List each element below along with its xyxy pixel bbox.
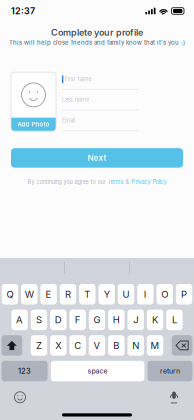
button[interactable]: Y [98,284,115,304]
button[interactable]: return [148,361,192,381]
staticText: & [123,179,131,185]
button[interactable]: D [50,310,66,330]
button[interactable]: I [137,284,154,304]
button[interactable]: N [127,335,144,356]
staticText: F [75,314,81,326]
button[interactable]: C [69,335,86,356]
button[interactable]: 123 [1,361,48,381]
button[interactable]: E [40,284,57,304]
button[interactable]: X [50,335,66,356]
staticText: Terms [107,179,123,185]
button[interactable]: J [127,310,144,330]
staticText: Privacy Policy [131,179,166,185]
button[interactable]: S [31,310,47,330]
button[interactable]: Terms [107,179,123,185]
button[interactable]: space [51,361,144,381]
staticText: X [55,340,61,351]
staticText: Email [62,117,75,124]
button[interactable]: Next [11,148,183,168]
staticText: Y [104,288,110,300]
staticText: O [161,288,168,300]
button[interactable]: O [156,284,173,304]
button[interactable]: Emoji keyboard [12,389,28,405]
button[interactable]: U [118,284,134,304]
staticText: R [65,288,71,300]
staticText: Q [6,288,13,300]
button[interactable]: Privacy Policy [131,179,166,185]
button[interactable]: P [176,284,192,304]
staticText: L [172,314,177,326]
staticText: A [16,314,23,326]
staticText: U [122,288,129,300]
staticText: Complete your profile [51,27,143,38]
button[interactable]: W [21,284,37,304]
button[interactable]: V [89,335,105,356]
staticText: H [113,314,120,326]
button[interactable]: H [108,310,124,330]
button[interactable]: L [166,310,183,330]
button[interactable]: Q [2,284,18,304]
staticText: T [84,288,90,300]
staticText: J [133,314,138,326]
button[interactable]: Z [31,335,47,356]
staticText: V [93,340,100,351]
staticText: B [113,340,119,351]
staticText: Add Photo [17,121,49,128]
button[interactable]: R [60,284,76,304]
staticText: I [144,288,147,300]
button[interactable]: F [69,310,86,330]
button[interactable]: T [79,284,95,304]
button[interactable]: Dictation [166,389,182,405]
staticText: W [25,288,34,300]
button[interactable]: G [89,310,105,330]
button[interactable]: B [108,335,124,356]
staticText: E [46,288,52,300]
staticText: space [88,367,108,375]
staticText: G [93,314,100,326]
staticText: First name [64,76,91,83]
button[interactable]: K [147,310,163,330]
button[interactable]: A [11,310,28,330]
staticText: M [150,340,159,351]
button[interactable]: Delete [172,335,192,356]
staticText: return [160,367,180,375]
staticText: 12:37 [11,6,35,16]
button[interactable]: M [147,335,163,356]
staticText: Z [36,340,42,351]
staticText: By continuing you agree to our [27,179,107,185]
staticText: K [152,314,158,326]
staticText: P [181,288,187,300]
staticText: C [74,340,81,351]
staticText: Next [87,153,106,163]
staticText: 123 [18,366,31,376]
staticText: This will help close friends and family … [9,39,185,46]
button[interactable]: Shift [1,335,22,356]
staticText: Last name [62,96,89,103]
staticText: D [55,314,62,326]
staticText: N [132,340,139,351]
button[interactable]: Add Photo [11,72,56,131]
staticText: S [36,314,42,326]
